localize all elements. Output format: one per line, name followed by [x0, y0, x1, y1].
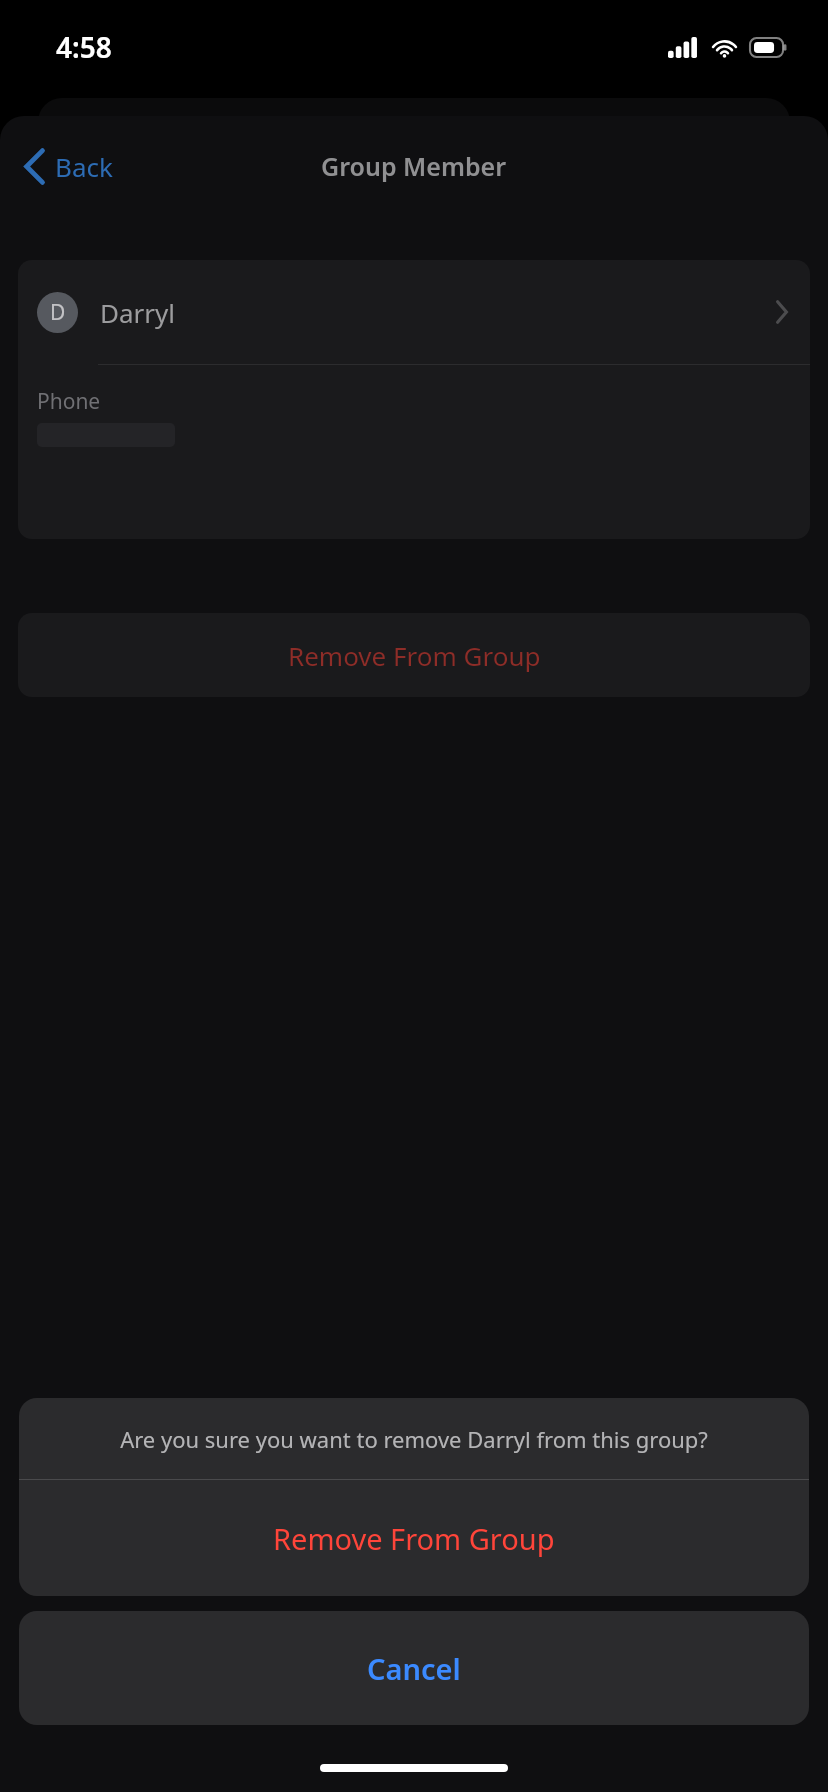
staticText: 4:58 [56, 28, 112, 66]
staticText: Remove From Group [288, 638, 541, 673]
button[interactable]: Remove From Group [19, 1480, 809, 1596]
button[interactable]: D [18, 260, 810, 364]
staticText: Cancel [367, 1649, 461, 1688]
button[interactable]: Remove From Group [18, 613, 810, 697]
other: Open member details [766, 292, 796, 332]
staticText: D [50, 298, 66, 327]
staticText: Remove From Group [273, 1519, 555, 1558]
staticText: Group Member [321, 149, 507, 183]
staticText: Back [55, 149, 113, 184]
staticText: Darryl [100, 295, 176, 330]
staticText: Are you sure you want to remove Darryl f… [120, 1424, 708, 1454]
button[interactable]: Cancel [19, 1611, 809, 1725]
staticText: Phone [37, 387, 101, 416]
button[interactable]: Back [14, 138, 123, 195]
